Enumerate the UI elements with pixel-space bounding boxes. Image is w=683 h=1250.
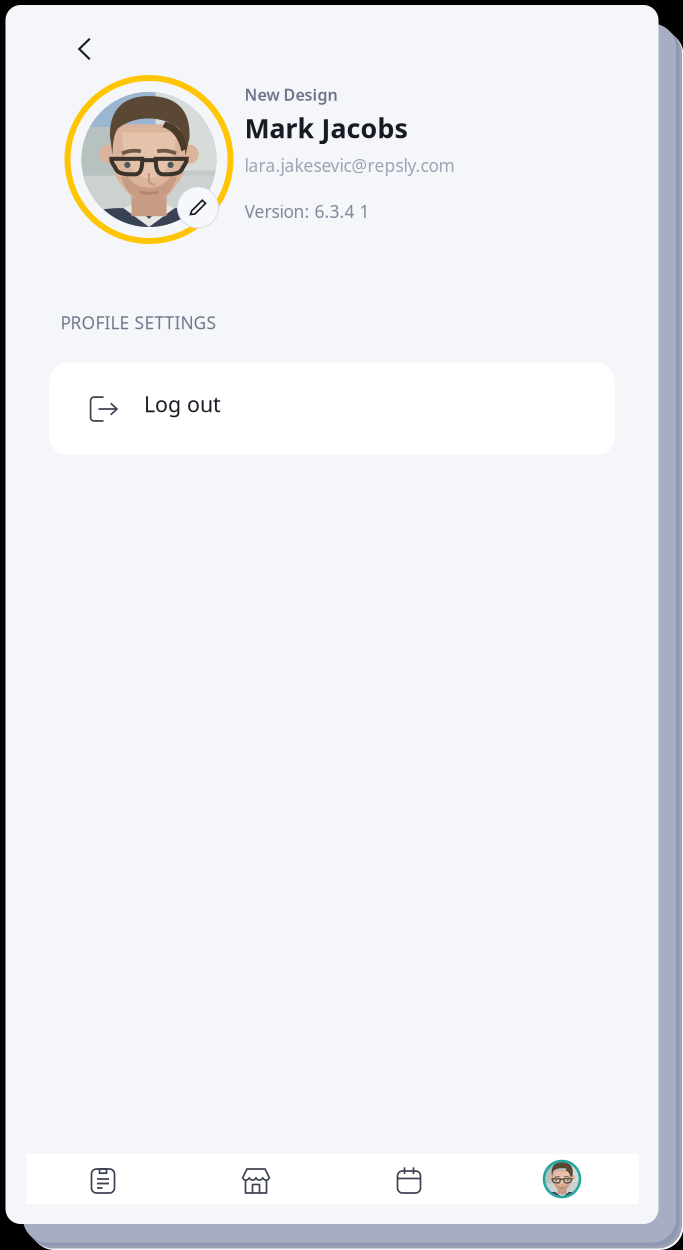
button[interactable]: Schedule bbox=[332, 1154, 485, 1204]
staticText: Mark Jacobs bbox=[244, 110, 407, 146]
button[interactable]: Places bbox=[179, 1154, 332, 1204]
staticText: Version: 6.3.4 1 bbox=[244, 200, 369, 223]
button[interactable]: Profile bbox=[485, 1154, 638, 1204]
staticText: New Design bbox=[244, 84, 337, 105]
staticText: Log out bbox=[144, 390, 221, 418]
staticText: PROFILE SETTINGS bbox=[60, 311, 216, 334]
button[interactable]: Back bbox=[64, 29, 104, 69]
button[interactable]: Activities bbox=[26, 1154, 179, 1204]
button[interactable]: Edit profile photo bbox=[177, 187, 218, 228]
button[interactable]: Log out bbox=[49, 363, 614, 455]
staticText: lara.jakesevic@repsly.com bbox=[244, 154, 454, 177]
